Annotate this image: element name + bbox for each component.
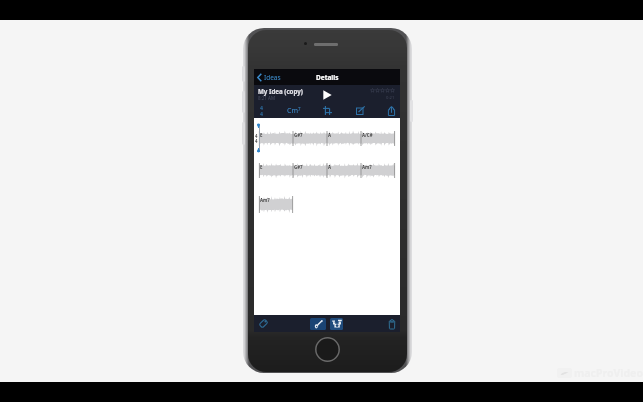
staticText: 4	[260, 104, 263, 111]
button[interactable]: Play	[318, 87, 336, 103]
staticText: E	[260, 132, 263, 138]
button[interactable]: Home	[315, 337, 340, 362]
staticText: Am7	[362, 164, 372, 170]
staticText: 4	[255, 133, 258, 139]
button[interactable]: Tag	[254, 315, 272, 332]
staticText: E	[260, 164, 263, 170]
button[interactable]: Edit	[351, 103, 370, 118]
button[interactable]: Crop	[318, 103, 337, 118]
button[interactable]: Time signature	[255, 103, 268, 118]
staticText: Ideas	[264, 73, 281, 82]
staticText: 0:21	[386, 95, 395, 101]
button[interactable]: Cm	[282, 103, 306, 118]
staticText: 4	[260, 110, 263, 117]
staticText: 7	[298, 106, 301, 112]
staticText: A	[328, 164, 332, 170]
staticText: Cm	[287, 106, 298, 116]
staticText: G#7	[294, 132, 303, 138]
staticText: A	[328, 132, 332, 138]
staticText: 4	[255, 138, 258, 144]
staticText: Am7	[260, 197, 270, 203]
button[interactable]: Delete	[384, 315, 400, 332]
staticText: G#7	[294, 164, 303, 170]
button[interactable]: Share	[383, 103, 399, 118]
staticText: 8:21 AM	[258, 95, 276, 101]
staticText: A/C#	[362, 132, 373, 138]
staticText: Details	[316, 73, 339, 82]
button[interactable]: Guitar	[310, 318, 326, 330]
button[interactable]: Drums	[330, 318, 343, 330]
button[interactable]: Ideas	[257, 69, 281, 85]
staticText: My Idea (copy)	[258, 87, 303, 95]
